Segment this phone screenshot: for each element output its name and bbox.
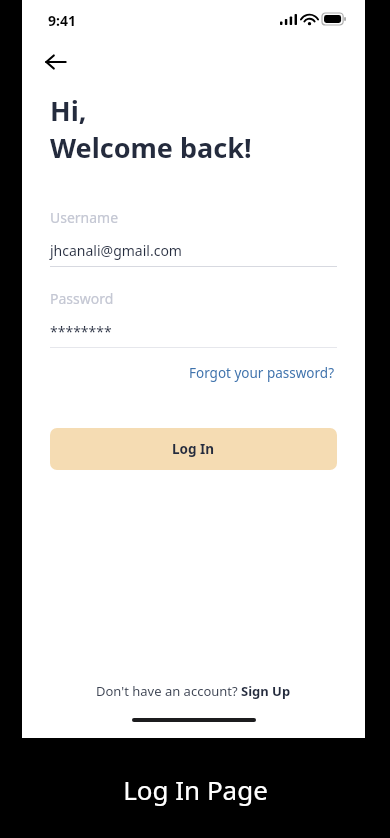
button[interactable]: Back [36,42,76,82]
staticText: ******** [50,322,112,341]
staticText: Log In [172,440,215,458]
staticText: jhcanali@gmail.com [50,241,182,260]
staticText: Username [50,208,119,227]
staticText: Log In Page [123,772,268,807]
staticText: 9:41 [48,11,76,30]
staticText: Don't have an account? Sign Up [96,682,291,700]
staticText: Hi, [50,92,87,129]
button[interactable]: Don't have an account? Sign Up [90,678,297,704]
staticText: Password [50,289,114,308]
button[interactable]: Log In [50,428,337,470]
button[interactable]: Forgot your password? [187,360,337,386]
staticText: Forgot your password? [189,364,335,382]
staticText: Welcome back! [50,129,252,166]
